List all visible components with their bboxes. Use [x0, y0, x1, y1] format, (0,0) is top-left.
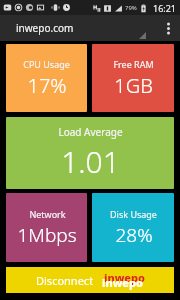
button[interactable]: Disconnect [6, 267, 174, 293]
button[interactable]: CPU Usage [6, 44, 87, 112]
staticText: Free RAM [113, 58, 154, 70]
staticText: 1GB [114, 72, 153, 99]
staticText: inwepo [102, 275, 143, 290]
staticText: 1Mbps [17, 222, 77, 248]
button[interactable]: Network [6, 193, 87, 262]
staticText: Disk Usage [110, 208, 157, 220]
staticText: 1.01 [61, 141, 120, 182]
staticText: 17% [27, 72, 67, 99]
staticText: 16:21 [153, 2, 177, 14]
staticText: Disconnect [36, 273, 94, 288]
staticText: inwepo.com [16, 21, 74, 35]
staticText: Load Average [58, 125, 123, 139]
button[interactable]: More options [156, 15, 180, 41]
button[interactable]: Disk Usage [92, 193, 174, 262]
staticText: inwepo [104, 270, 145, 285]
staticText: CPU Usage [23, 58, 70, 70]
staticText: 28% [115, 222, 153, 248]
button[interactable]: Free RAM [92, 44, 174, 112]
staticText: Network [29, 208, 66, 220]
staticText: 79% [125, 4, 137, 12]
button[interactable]: Load Average [6, 117, 174, 189]
